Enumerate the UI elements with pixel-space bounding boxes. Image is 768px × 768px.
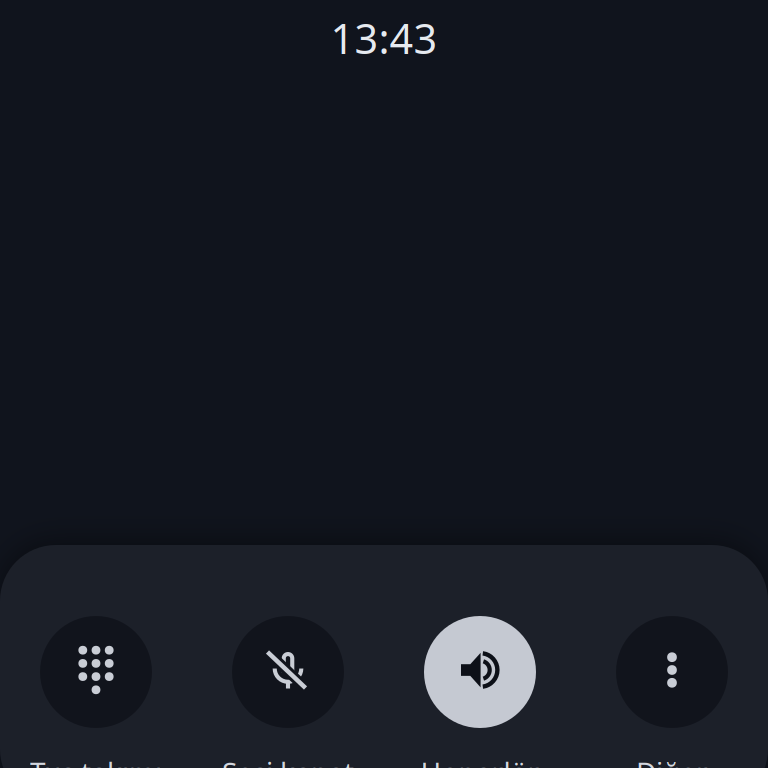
staticText: Hoparlör <box>420 753 539 768</box>
button[interactable]: Sesi kapat <box>192 616 384 768</box>
staticText: Tuş takımı <box>30 753 162 768</box>
button[interactable]: Tuş takımı <box>0 616 192 768</box>
staticText: 13:43 <box>330 11 437 65</box>
staticText: Diğer <box>636 753 708 768</box>
staticText: Sesi kapat <box>222 753 354 768</box>
button[interactable]: Diğer <box>576 616 768 768</box>
button[interactable]: Hoparlör <box>384 616 576 768</box>
